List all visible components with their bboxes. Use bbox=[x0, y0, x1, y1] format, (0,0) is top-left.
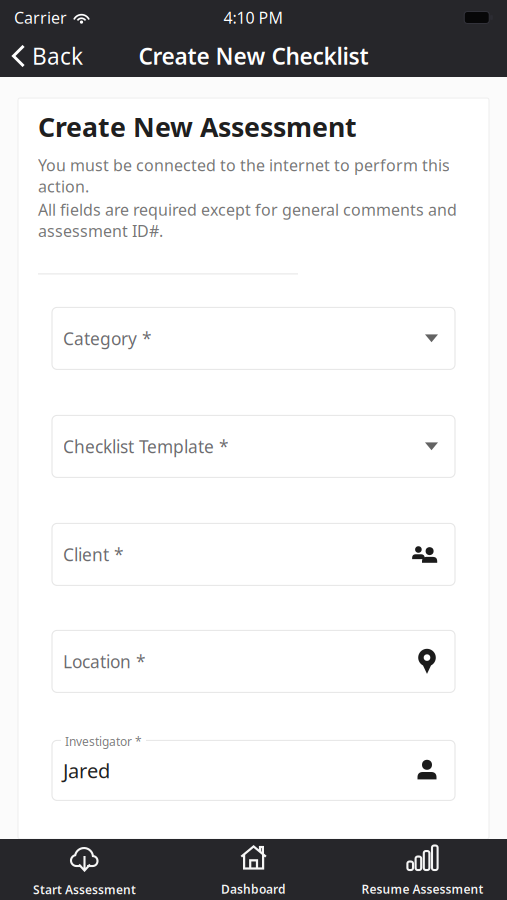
staticText: Checklist Template * bbox=[63, 435, 229, 458]
staticText: You must be connected to the internet to… bbox=[38, 154, 450, 197]
staticText: Jared bbox=[63, 757, 110, 784]
staticText: Back bbox=[32, 41, 83, 71]
staticText: Start Assessment bbox=[33, 881, 136, 897]
button[interactable]: Jared bbox=[52, 740, 455, 800]
button[interactable]: Checklist Template * bbox=[52, 415, 455, 477]
staticText: Resume Assessment bbox=[361, 881, 483, 897]
button[interactable]: Back bbox=[0, 35, 95, 77]
button[interactable]: Dashboard bbox=[169, 839, 338, 900]
button[interactable]: Start Assessment bbox=[0, 838, 169, 900]
staticText: Carrier bbox=[14, 7, 67, 28]
button[interactable]: Category * bbox=[52, 307, 455, 369]
staticText: Investigator * bbox=[65, 733, 142, 749]
button[interactable]: Resume Assessment bbox=[338, 839, 507, 900]
staticText: Location * bbox=[63, 650, 146, 673]
button[interactable]: Location * bbox=[52, 630, 455, 692]
staticText: Create New Assessment bbox=[38, 109, 357, 144]
staticText: All fields are required except for gener… bbox=[38, 199, 457, 241]
staticText: Create New Checklist bbox=[138, 41, 368, 71]
staticText: 4:10 PM bbox=[223, 7, 283, 28]
staticText: Client * bbox=[63, 543, 124, 566]
button[interactable]: Client * bbox=[52, 523, 455, 585]
staticText: Dashboard bbox=[221, 881, 286, 897]
staticText: Category * bbox=[63, 327, 152, 350]
